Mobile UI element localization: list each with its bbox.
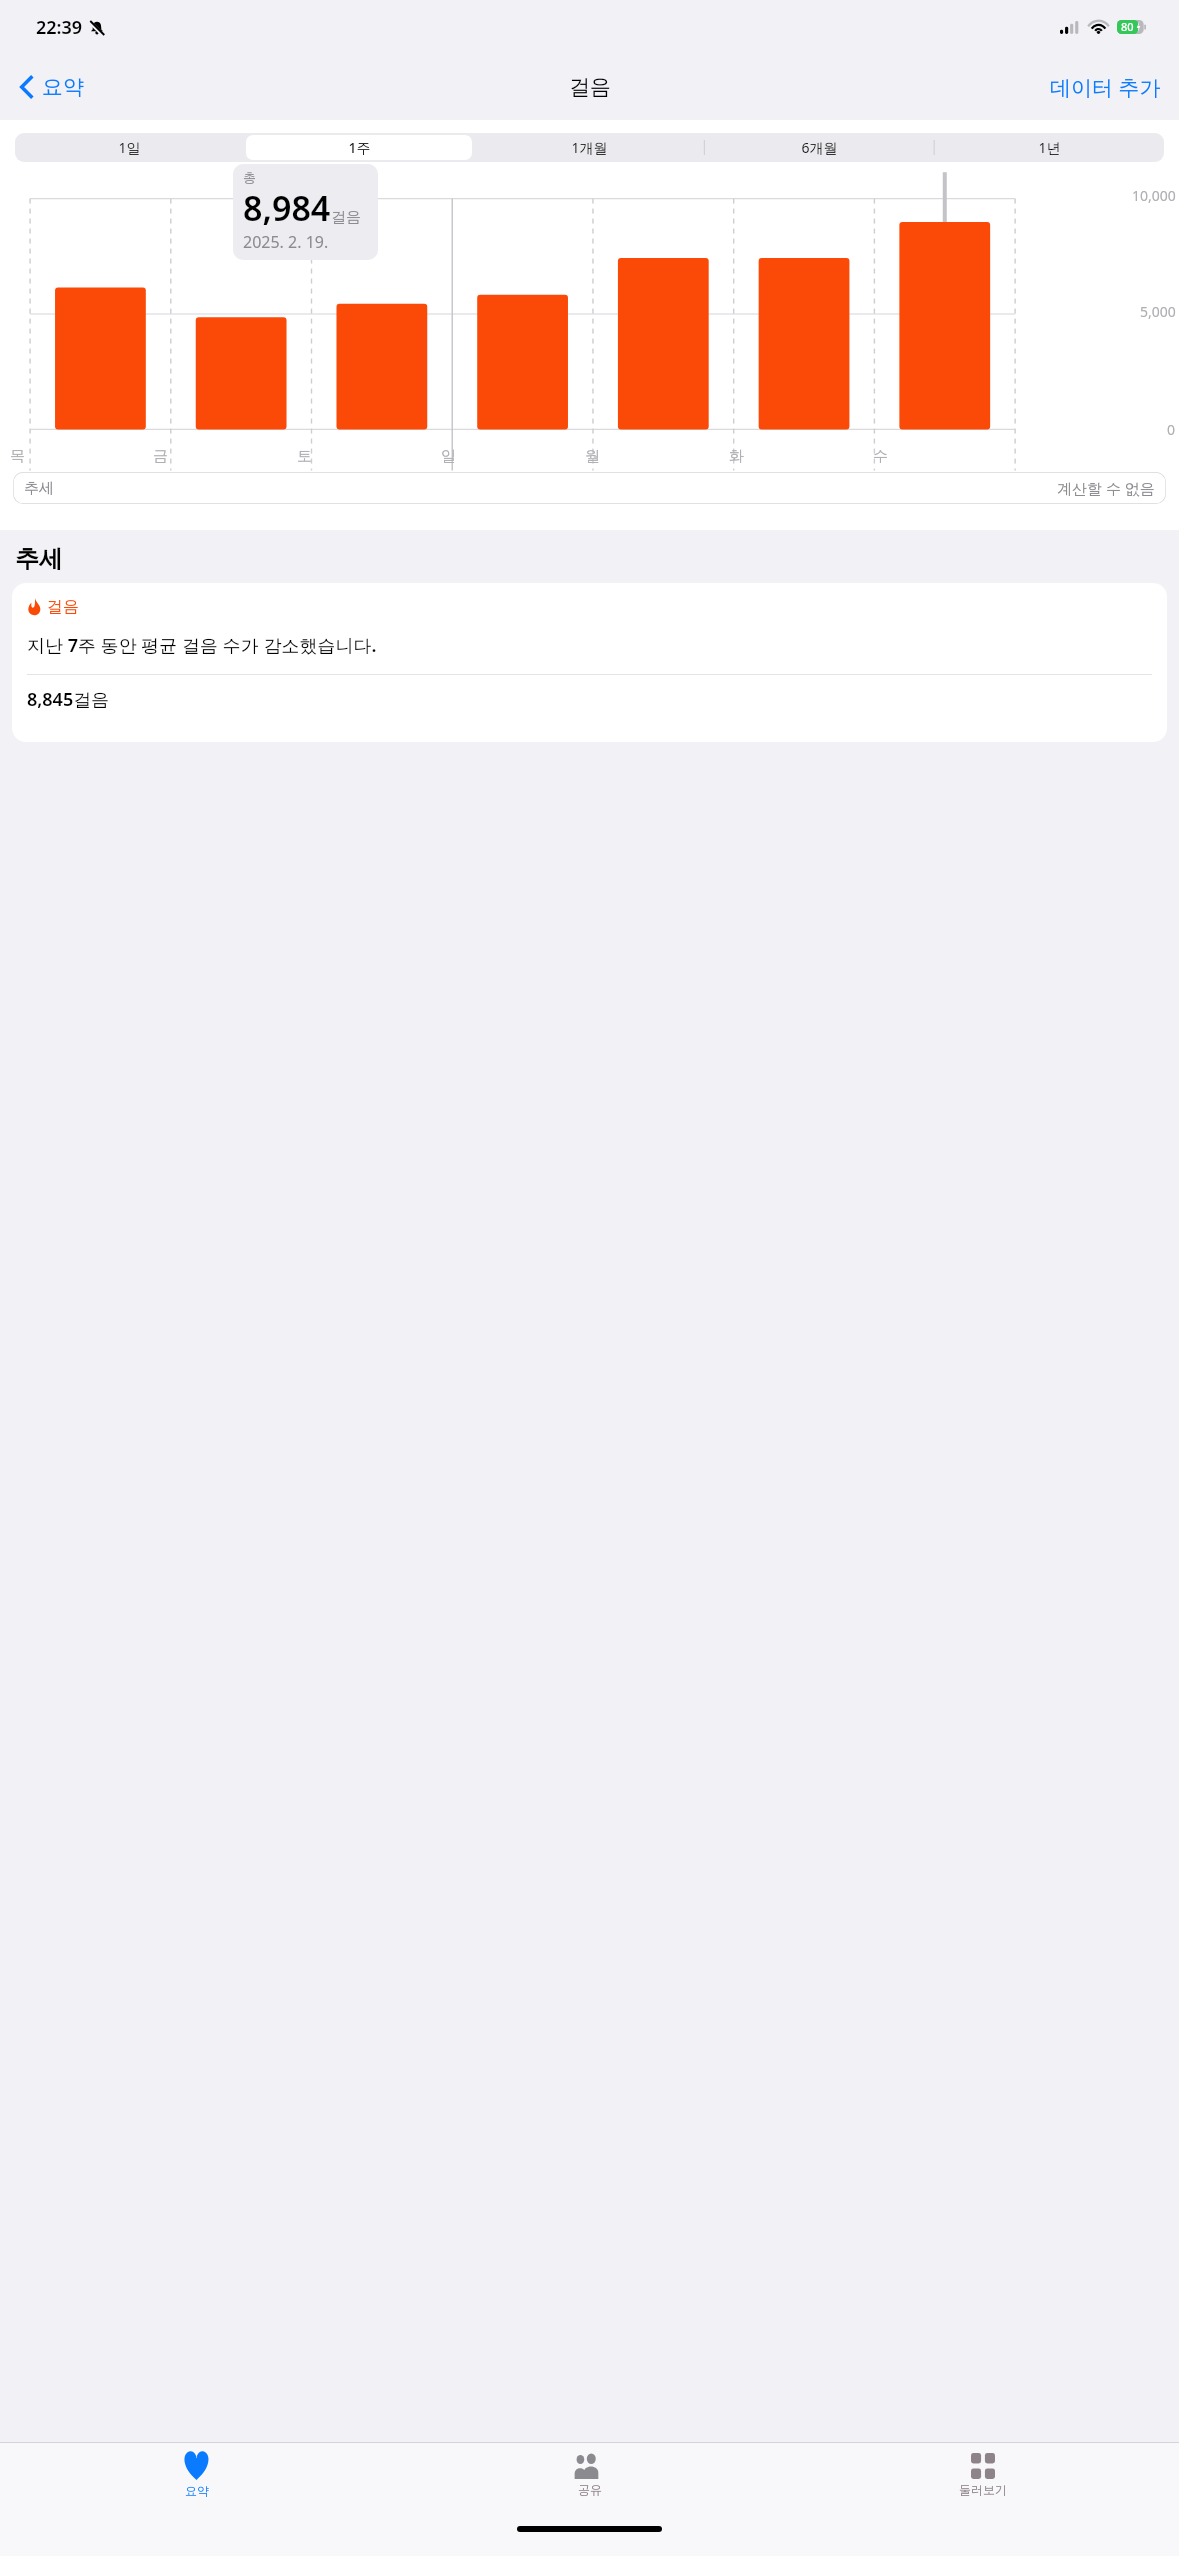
button[interactable]: 총 <box>233 164 378 260</box>
button[interactable]: 공유 <box>393 2443 786 2506</box>
staticText: 걸음 <box>331 208 361 227</box>
staticText: 계산할 수 없음 <box>1057 478 1155 498</box>
staticText: 22:39 <box>36 15 83 40</box>
staticText: 월 <box>585 447 600 466</box>
staticText: 일 <box>441 447 456 466</box>
button[interactable]: 데이터 추가 <box>1042 67 1169 108</box>
staticText: 걸음 <box>569 74 611 100</box>
staticText: 10,000 <box>1132 186 1176 205</box>
staticText: 추세 <box>15 544 63 574</box>
staticText: 추세 <box>24 479 54 498</box>
button[interactable]: 요약 <box>12 68 92 106</box>
staticText: 1년 <box>1038 138 1061 157</box>
staticText: 목 <box>10 447 25 466</box>
button[interactable]: 6개월 <box>706 135 932 160</box>
staticText: 6개월 <box>801 138 838 157</box>
staticText: 8,984 <box>243 185 331 231</box>
staticText: 1개월 <box>571 138 608 157</box>
staticText: 금 <box>153 447 168 466</box>
staticText: 요약 <box>42 74 84 100</box>
staticText: 걸음 <box>47 597 79 617</box>
staticText: 1주 <box>348 138 371 157</box>
staticText: 공유 <box>578 2482 602 2497</box>
staticText: 80 <box>1121 19 1134 34</box>
staticText: 데이터 추가 <box>1050 73 1161 102</box>
staticText: 둘러보기 <box>959 2482 1007 2497</box>
button[interactable]: 걸음 <box>12 583 1167 742</box>
staticText: 2025. 2. 19. <box>243 231 329 253</box>
button[interactable]: 1주 <box>246 135 472 160</box>
button[interactable]: 추세 <box>13 472 1166 504</box>
staticText: 총 <box>243 169 256 185</box>
staticText: 요약 <box>185 2483 209 2498</box>
button[interactable]: 1년 <box>936 135 1162 160</box>
button[interactable]: 1개월 <box>476 135 702 160</box>
staticText: 8,845걸음 <box>27 687 110 712</box>
button[interactable]: 둘러보기 <box>786 2443 1179 2506</box>
staticText: 토 <box>297 447 312 466</box>
button[interactable]: 요약 <box>0 2443 393 2506</box>
staticText: 화 <box>729 447 744 466</box>
staticText: 수 <box>873 447 888 466</box>
staticText: 5,000 <box>1140 302 1176 321</box>
staticText: 0 <box>1167 420 1176 439</box>
button[interactable]: 1일 <box>17 135 242 160</box>
staticText: 지난 7주 동안 평균 걸음 수가 감소했습니다. <box>27 633 377 658</box>
staticText: 1일 <box>118 138 141 157</box>
